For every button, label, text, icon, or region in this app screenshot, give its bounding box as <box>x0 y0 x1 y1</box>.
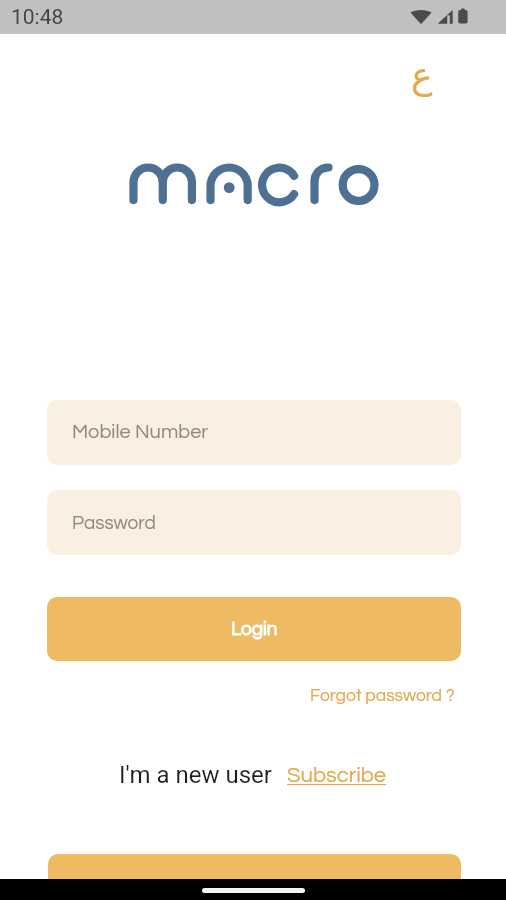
button[interactable]: Login <box>47 597 461 661</box>
button[interactable]: Password <box>47 490 461 555</box>
button[interactable]: Subscribe <box>287 764 387 787</box>
button[interactable]: Switch language to Arabic <box>399 53 445 99</box>
staticText: Forgot password ? <box>310 687 455 705</box>
staticText: Subscribe <box>287 764 387 787</box>
staticText: I'm a new user <box>119 761 272 789</box>
staticText: Login <box>231 619 278 639</box>
button[interactable]: Mobile Number <box>47 400 461 465</box>
button[interactable] <box>48 854 461 900</box>
staticText: ع <box>411 55 433 97</box>
staticText: Password <box>72 513 156 533</box>
button[interactable]: Forgot password ? <box>304 680 461 712</box>
staticText: Mobile Number <box>72 422 209 443</box>
staticText: 10:48 <box>11 5 64 30</box>
